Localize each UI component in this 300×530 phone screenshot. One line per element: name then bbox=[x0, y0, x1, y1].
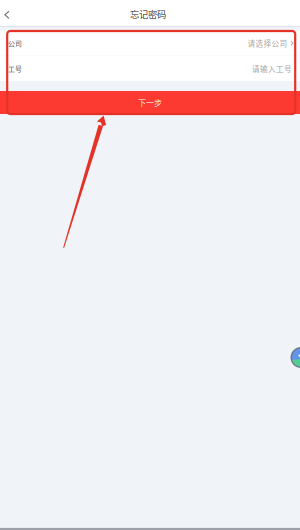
button[interactable]: 下一步 bbox=[0, 91, 300, 114]
staticText: 请选择公司 bbox=[247, 38, 287, 49]
button[interactable]: Back bbox=[0, 0, 22, 26]
staticText: 请输入工号 bbox=[252, 63, 292, 74]
button[interactable]: 公司 bbox=[0, 31, 300, 56]
button[interactable]: Assistive touch bbox=[290, 347, 300, 368]
staticText: 工号 bbox=[8, 64, 22, 74]
staticText: 下一步 bbox=[138, 97, 162, 108]
staticText: 公司 bbox=[8, 38, 22, 48]
staticText: 忘记密码 bbox=[130, 7, 166, 21]
button[interactable]: 工号 bbox=[0, 56, 300, 81]
